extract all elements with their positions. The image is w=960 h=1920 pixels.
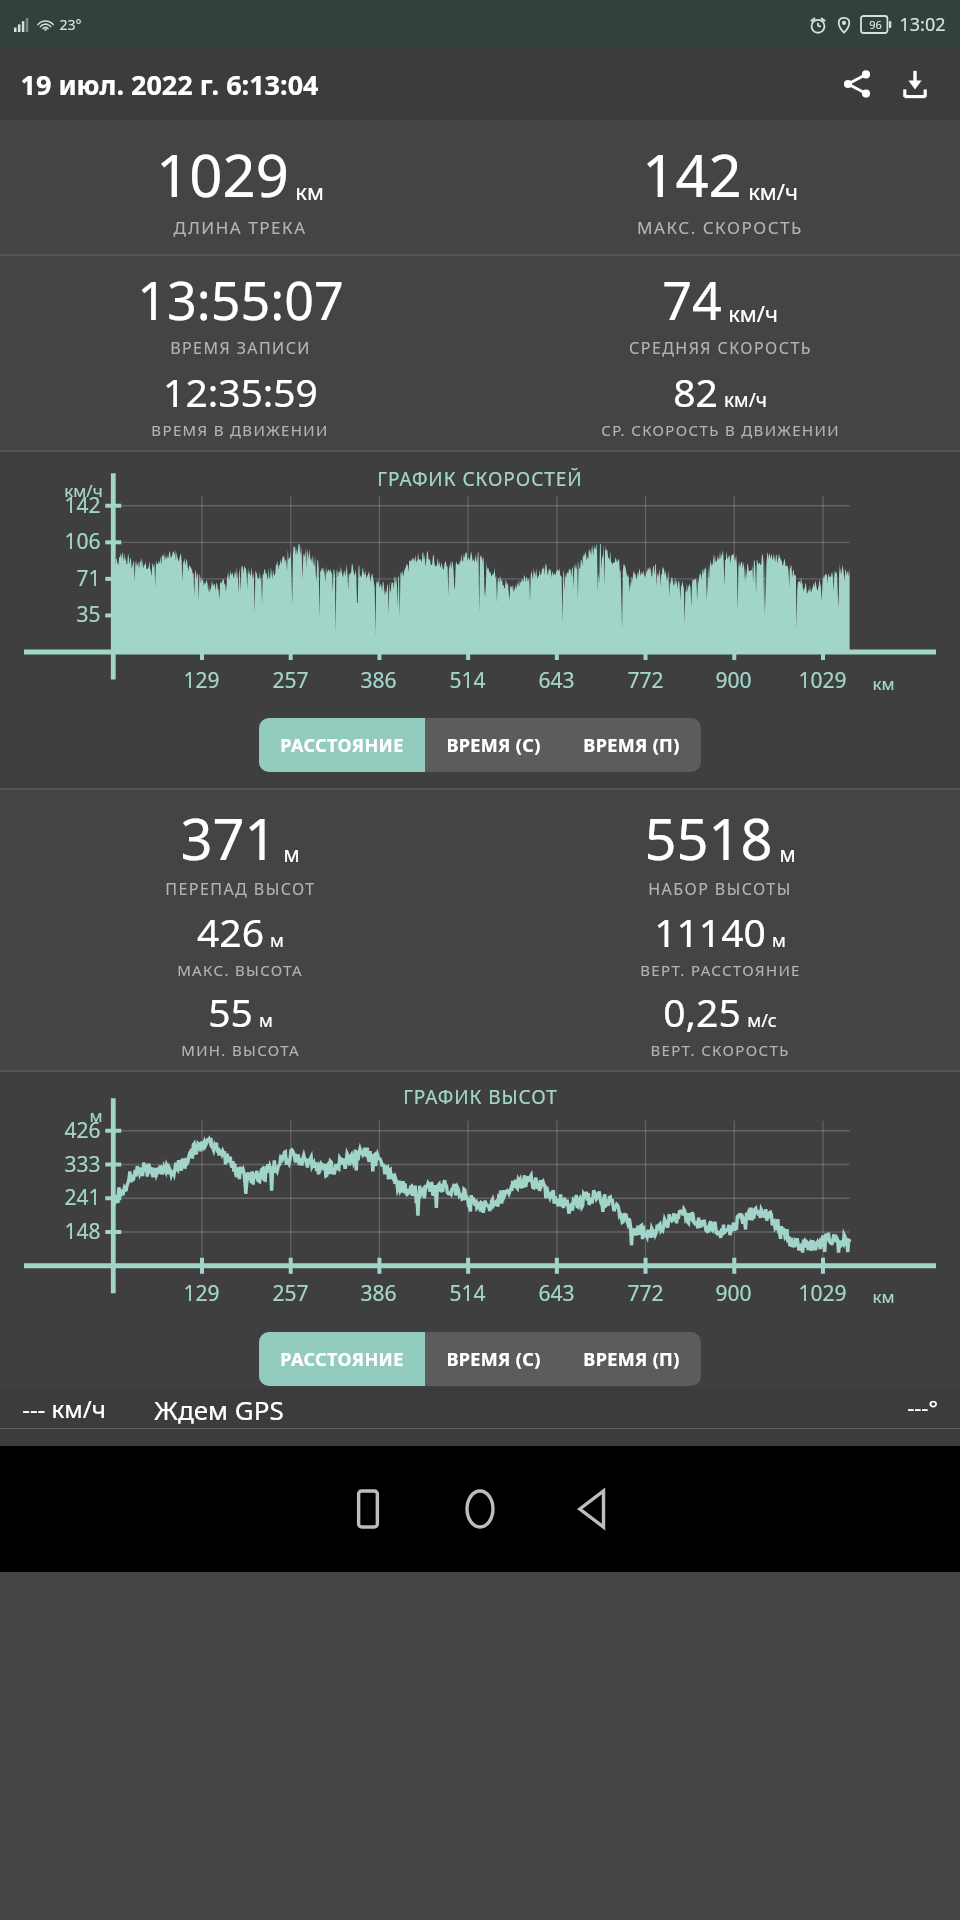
button[interactable]: ВРЕМЯ (П)	[562, 1332, 701, 1386]
staticText: 772	[627, 666, 664, 695]
staticText: 643	[538, 1279, 575, 1308]
button[interactable]: 1029	[0, 135, 480, 239]
staticText: 900	[715, 1279, 752, 1308]
staticText: ВРЕМЯ ЗАПИСИ	[170, 337, 311, 359]
button[interactable]: 5518	[480, 800, 960, 900]
staticText: ВРЕМЯ (С)	[446, 733, 541, 758]
staticText: 772	[627, 1279, 664, 1308]
button[interactable]: РАССТОЯНИЕ	[259, 1332, 425, 1386]
staticText: м	[283, 840, 300, 869]
staticText: 82	[673, 365, 718, 418]
button[interactable]: ВРЕМЯ (С)	[425, 718, 562, 772]
staticText: 514	[449, 666, 486, 695]
staticText: ГРАФИК ВЫСОТ	[403, 1084, 558, 1110]
button[interactable]: Back	[536, 1453, 648, 1565]
staticText: 371	[180, 800, 277, 876]
staticText: МИН. ВЫСОТА	[181, 1040, 300, 1060]
staticText: 11140	[654, 905, 766, 958]
staticText: 12:35:59	[163, 365, 318, 418]
staticText: 106	[64, 527, 101, 556]
staticText: ВРЕМЯ (П)	[583, 733, 680, 758]
staticText: км/ч	[724, 387, 767, 413]
staticText: 35	[76, 600, 101, 629]
button[interactable]: 142	[480, 135, 960, 239]
staticText: 333	[64, 1150, 101, 1179]
button[interactable]: 74	[480, 264, 960, 359]
staticText: 142	[64, 491, 101, 520]
staticText: км	[295, 176, 324, 206]
button[interactable]: Download	[886, 55, 944, 113]
staticText: 0,25	[663, 985, 741, 1038]
staticText: НАБОР ВЫСОТЫ	[648, 878, 792, 900]
staticText: 74	[662, 264, 722, 335]
staticText: 386	[360, 666, 397, 695]
staticText: м/с	[747, 1008, 777, 1033]
staticText: 142	[642, 135, 742, 214]
button[interactable]: 426	[0, 905, 480, 980]
staticText: ---°	[907, 1392, 938, 1422]
staticText: ВЕРТ. РАССТОЯНИЕ	[640, 960, 801, 980]
button[interactable]: ВРЕМЯ (С)	[425, 1332, 562, 1386]
staticText: км/ч	[64, 479, 103, 502]
staticText: 257	[272, 1279, 309, 1308]
staticText: ГРАФИК СКОРОСТЕЙ	[377, 466, 583, 492]
staticText: ДЛИНА ТРЕКА	[173, 216, 307, 239]
staticText: 426	[64, 1116, 101, 1145]
staticText: ВРЕМЯ В ДВИЖЕНИИ	[151, 420, 329, 440]
staticText: 257	[272, 666, 309, 695]
staticText: м	[89, 1104, 103, 1127]
staticText: м	[270, 928, 284, 953]
button[interactable]: 0,25	[480, 985, 960, 1060]
staticText: 19 июл. 2022 г. 6:13:04	[20, 66, 319, 103]
staticText: км/ч	[728, 298, 778, 328]
staticText: м	[259, 1008, 273, 1033]
staticText: ВРЕМЯ (П)	[583, 1347, 680, 1372]
staticText: РАССТОЯНИЕ	[280, 733, 404, 758]
staticText: 900	[715, 666, 752, 695]
staticText: 241	[64, 1183, 101, 1212]
staticText: 96	[869, 17, 882, 32]
staticText: 1029	[156, 135, 289, 214]
staticText: км	[872, 672, 895, 695]
button[interactable]: 82	[480, 365, 960, 440]
staticText: 148	[64, 1217, 101, 1246]
staticText: м	[772, 928, 786, 953]
staticText: МАКС. ВЫСОТА	[177, 960, 303, 980]
staticText: 643	[538, 666, 575, 695]
staticText: км	[872, 1285, 895, 1308]
staticText: 1029	[798, 666, 847, 695]
staticText: 386	[360, 1279, 397, 1308]
button[interactable]: 11140	[480, 905, 960, 980]
staticText: СРЕДНЯЯ СКОРОСТЬ	[629, 337, 812, 359]
staticText: 23°	[59, 15, 82, 34]
staticText: 514	[449, 1279, 486, 1308]
button[interactable]: ВРЕМЯ (П)	[562, 718, 701, 772]
staticText: 129	[183, 1279, 220, 1308]
button[interactable]: 55	[0, 985, 480, 1060]
staticText: РАССТОЯНИЕ	[280, 1347, 404, 1372]
staticText: 13:55:07	[137, 264, 344, 335]
staticText: ВЕРТ. СКОРОСТЬ	[650, 1040, 790, 1060]
staticText: 71	[76, 564, 101, 593]
staticText: 5518	[644, 800, 773, 876]
staticText: 129	[183, 666, 220, 695]
staticText: км/ч	[748, 176, 798, 206]
staticText: МАКС. СКОРОСТЬ	[637, 216, 803, 239]
button[interactable]: 19 июл. 2022 г. 6:13:04	[20, 66, 319, 103]
staticText: м	[779, 840, 796, 869]
staticText: ВРЕМЯ (С)	[446, 1347, 541, 1372]
staticText: СР. СКОРОСТЬ В ДВИЖЕНИИ	[601, 420, 840, 440]
button[interactable]: 13:55:07	[0, 264, 480, 359]
button[interactable]: 12:35:59	[0, 365, 480, 440]
staticText: 1029	[798, 1279, 847, 1308]
staticText: 13:02	[899, 12, 946, 37]
staticText: Ждем GPS	[154, 1392, 284, 1427]
staticText: 426	[197, 905, 264, 958]
button[interactable]: Recents	[312, 1453, 424, 1565]
button[interactable]: РАССТОЯНИЕ	[259, 718, 425, 772]
button[interactable]: Home	[424, 1453, 536, 1565]
staticText: ПЕРЕПАД ВЫСОТ	[165, 878, 316, 900]
button[interactable]: 371	[0, 800, 480, 900]
button[interactable]: Share	[828, 55, 886, 113]
staticText: --- км/ч	[22, 1392, 106, 1425]
